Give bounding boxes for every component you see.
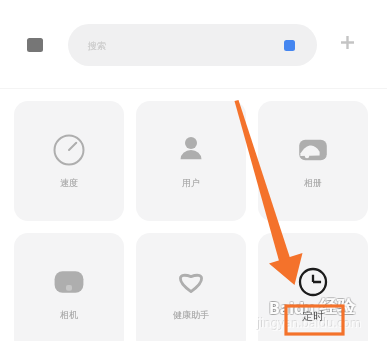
staticText: Baidu (269, 296, 315, 318)
staticText: 相机 (60, 309, 78, 320)
staticText: 经验 (319, 297, 355, 320)
button[interactable]: 速度 (14, 101, 124, 221)
button[interactable]: Add device (326, 21, 368, 63)
staticText: 经验 (320, 296, 356, 319)
staticText: jingyan.baidu.com (258, 315, 362, 331)
staticText: 经验 (318, 295, 354, 318)
staticText: 经验 (319, 296, 355, 319)
button[interactable] (258, 233, 368, 341)
button[interactable]: 健康助手 (136, 233, 246, 341)
button[interactable]: 相册 (258, 101, 368, 221)
button[interactable]: 用户 (136, 101, 246, 221)
staticText: Baidu (269, 298, 315, 320)
staticText: jingyan.baidu.com (257, 314, 361, 330)
staticText: 用户 (182, 177, 200, 188)
staticText: Baidu (268, 296, 314, 318)
staticText: Baidu (269, 297, 315, 319)
button[interactable]: 搜索 (68, 24, 317, 66)
staticText: 搜索 (88, 40, 106, 51)
staticText: 经验 (318, 296, 354, 319)
staticText: 健康助手 (173, 309, 209, 320)
staticText: 经验 (320, 297, 356, 320)
staticText: 经验 (320, 295, 356, 318)
staticText: 经验 (319, 295, 355, 318)
staticText: 定时 (302, 309, 324, 323)
staticText: Baidu (270, 296, 316, 318)
staticText: 速度 (60, 177, 78, 188)
button[interactable]: 相机 (14, 233, 124, 341)
button[interactable]: Categories (14, 24, 56, 66)
staticText: Baidu (270, 298, 316, 320)
staticText: 相册 (304, 177, 322, 188)
staticText: 经验 (318, 297, 354, 320)
staticText: Baidu (268, 298, 314, 320)
staticText: Baidu (268, 297, 314, 319)
staticText: Baidu (270, 297, 316, 319)
